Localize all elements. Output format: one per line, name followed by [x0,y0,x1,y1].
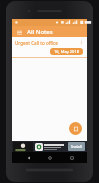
button[interactable]: Install [12,141,87,152]
staticText: Urgent Call to office [15,40,78,46]
button[interactable]: More options [78,39,85,46]
staticText: Install [71,144,82,149]
button[interactable]: Home [44,152,55,163]
button[interactable]: Recent apps [66,152,77,163]
button[interactable]: Back [23,152,34,163]
button[interactable]: Open navigation menu [15,28,23,36]
staticText: All Notes [27,28,53,36]
staticText: 16, May 2018 [54,49,79,54]
button[interactable]: Install [68,142,85,151]
button[interactable]: 16, May 2018 [50,48,83,55]
button[interactable]: Urgent Call to office [12,37,87,57]
button[interactable]: Add note [69,122,82,135]
